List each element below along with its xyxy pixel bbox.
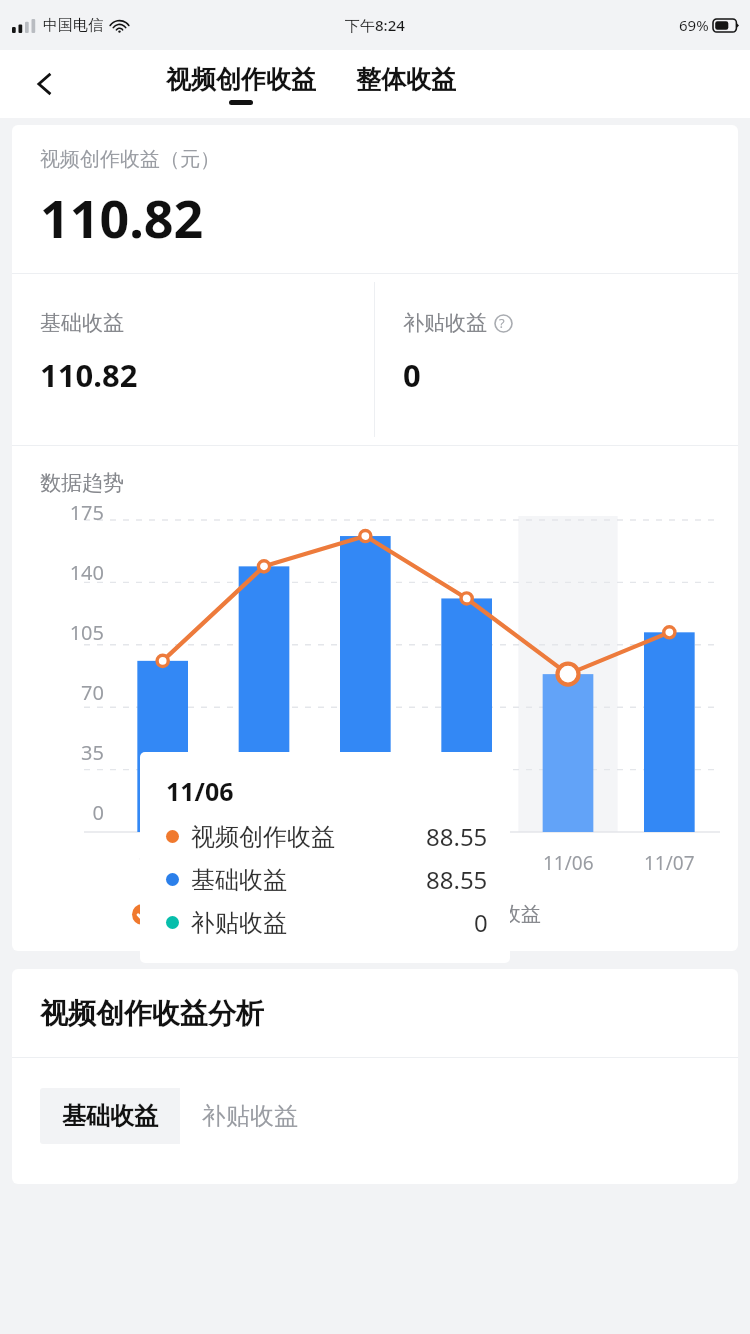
button[interactable]: 基础收益 <box>40 1088 180 1144</box>
staticText: 11/07 <box>644 850 695 876</box>
staticText: 69% <box>679 15 709 35</box>
button[interactable]: Back <box>18 57 72 111</box>
staticText: 88.55 <box>426 820 488 853</box>
staticText: 140 <box>69 559 104 581</box>
button[interactable]: 视频创作收益 <box>160 64 322 105</box>
staticText: 视频创作收益 <box>166 64 316 95</box>
button[interactable]: 整体收益 <box>350 65 462 104</box>
staticText: 11/06 <box>543 850 594 876</box>
staticText: 70 <box>81 679 104 701</box>
staticText: 0 <box>474 906 488 939</box>
staticText: 175 <box>69 499 104 521</box>
staticText: 11/02 <box>138 850 189 876</box>
button[interactable]: 补贴收益 <box>180 1088 320 1144</box>
staticText: 下午8:24 <box>345 15 405 35</box>
staticText: 中国电信 <box>43 16 103 35</box>
staticText: 0 <box>92 799 104 821</box>
staticText: 110.82 <box>40 182 204 253</box>
staticText: 基础收益 <box>40 310 124 336</box>
staticText: 视频创作收益 <box>191 822 335 852</box>
staticText: 11/03 <box>240 850 291 876</box>
staticText: 11/06 <box>166 774 234 808</box>
button[interactable]: 补贴收益 <box>434 900 541 929</box>
button[interactable]: 补贴收益 <box>375 274 738 445</box>
staticText: 补贴收益 <box>202 1101 298 1131</box>
staticText: 补贴收益 <box>403 310 487 336</box>
staticText: 视频创作收益 <box>159 902 279 927</box>
staticText: 视频创作收益分析 <box>40 996 264 1031</box>
staticText: 视频创作收益（元） <box>40 147 220 172</box>
staticText: 110.82 <box>40 354 138 396</box>
staticText: 35 <box>81 739 104 761</box>
staticText: 基础收益 <box>62 1101 158 1131</box>
staticText: 105 <box>69 619 104 641</box>
staticText: ? <box>499 314 505 332</box>
staticText: 88.55 <box>426 863 488 896</box>
button[interactable]: 视频创作收益 <box>132 900 279 929</box>
staticText: 11/05 <box>442 850 493 876</box>
staticText: 整体收益 <box>356 64 456 95</box>
staticText: 补贴收益 <box>191 908 287 938</box>
button[interactable]: 基础收益 <box>12 274 374 445</box>
staticText: 数据趋势 <box>40 470 124 496</box>
staticText: 基础收益 <box>191 865 287 895</box>
staticText: 补贴收益 <box>461 902 541 927</box>
staticText: 0 <box>403 354 421 396</box>
